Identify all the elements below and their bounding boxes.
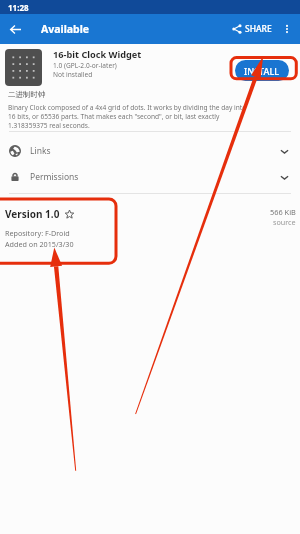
staticText: Available: [41, 22, 90, 36]
staticText: 1.0 (GPL-2.0-or-later): [53, 61, 117, 70]
button[interactable]: INSTALL: [235, 60, 289, 81]
staticText: 11:28: [8, 2, 29, 13]
button[interactable]: Permissions: [0, 164, 300, 190]
staticText: Repository: F-Droid: [5, 228, 70, 238]
staticText: Binary Clock composed of a 4x4 grid of d…: [8, 103, 250, 130]
staticText: source: [273, 217, 296, 227]
staticText: Not installed: [53, 70, 93, 79]
button[interactable]: SHARE: [227, 17, 277, 41]
staticText: 16-bit Clock Widget: [53, 48, 142, 61]
button[interactable]: Back: [0, 14, 31, 44]
staticText: SHARE: [245, 23, 272, 35]
staticText: Permissions: [30, 171, 79, 183]
staticText: INSTALL: [244, 65, 280, 77]
button[interactable]: Links: [0, 138, 300, 164]
staticText: 二进制时钟: [8, 90, 46, 99]
staticText: Version 1.0: [5, 207, 60, 221]
staticText: Links: [30, 145, 51, 157]
staticText: Added on 2015/3/30: [5, 239, 74, 249]
staticText: 566 KiB: [270, 207, 296, 217]
button[interactable]: More options: [277, 14, 297, 44]
